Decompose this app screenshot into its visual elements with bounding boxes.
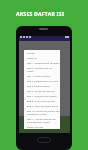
button[interactable]: Bab 7 Bioteknologi Pangan — [24, 94, 60, 99]
button[interactable]: Bab 9 Sistem Ekskresi Tubuh — [24, 104, 60, 109]
staticText: Daftar Pustaka — [27, 126, 43, 128]
button[interactable]: Daftar Pustaka — [24, 125, 60, 129]
button[interactable]: Daftar Isi — [24, 56, 60, 61]
button[interactable]: Sampul — [24, 51, 60, 56]
button[interactable]: Bab 5 Pola Hereditas — [24, 84, 60, 89]
staticText: Bab 11 Sistem Reproduksi dan — [27, 118, 60, 121]
staticText: Bab 2 Metabolisme Sel Makhluk — [27, 67, 60, 70]
button[interactable]: Bab 2 Metabolisme Sel Makhluk — [24, 66, 60, 74]
staticText: Bab 10 Sistem Koordinasi dan — [27, 110, 60, 113]
staticText: AKSES DAFTAR ISI — [0, 10, 84, 17]
staticText: Pertahanan Tubuh — [27, 113, 48, 116]
button[interactable]: Bab 6 Mutasi dan Evolusi Alam — [24, 89, 60, 94]
staticText: Hidup — [27, 70, 34, 73]
staticText: Bab 7 Bioteknologi Pangan — [27, 95, 57, 98]
staticText: Bab 5 Pola Hereditas — [27, 85, 50, 88]
button[interactable]: Home — [37, 137, 51, 143]
staticText: Sampul — [27, 52, 36, 55]
staticText: Bab 4 Pembelahan Sel Hidup — [27, 80, 59, 83]
button[interactable]: Bab 3 Materi Genetik — [24, 74, 60, 79]
staticText: Bab 9 Sistem Ekskresi Tubuh — [27, 105, 59, 108]
staticText: Bab 8 Sistem Pernapasan — [27, 100, 55, 103]
staticText: Pertumbuhan Hewan — [27, 121, 51, 124]
button[interactable]: Bab 10 Sistem Koordinasi dan — [24, 109, 60, 117]
button[interactable]: Bab 4 Pembelahan Sel Hidup — [24, 79, 60, 84]
button[interactable]: Bab 1 Pertumbuhan Tanaman — [24, 61, 60, 66]
staticText: Bab 3 Materi Genetik — [27, 75, 51, 78]
button[interactable]: Bab 8 Sistem Pernapasan — [24, 99, 60, 104]
button[interactable]: Bab 11 Sistem Reproduksi dan — [24, 117, 60, 125]
staticText: Bab 1 Pertumbuhan Tanaman — [27, 62, 60, 65]
staticText: Daftar Isi — [27, 57, 37, 60]
staticText: Bab 6 Mutasi dan Evolusi Alam — [27, 90, 60, 93]
